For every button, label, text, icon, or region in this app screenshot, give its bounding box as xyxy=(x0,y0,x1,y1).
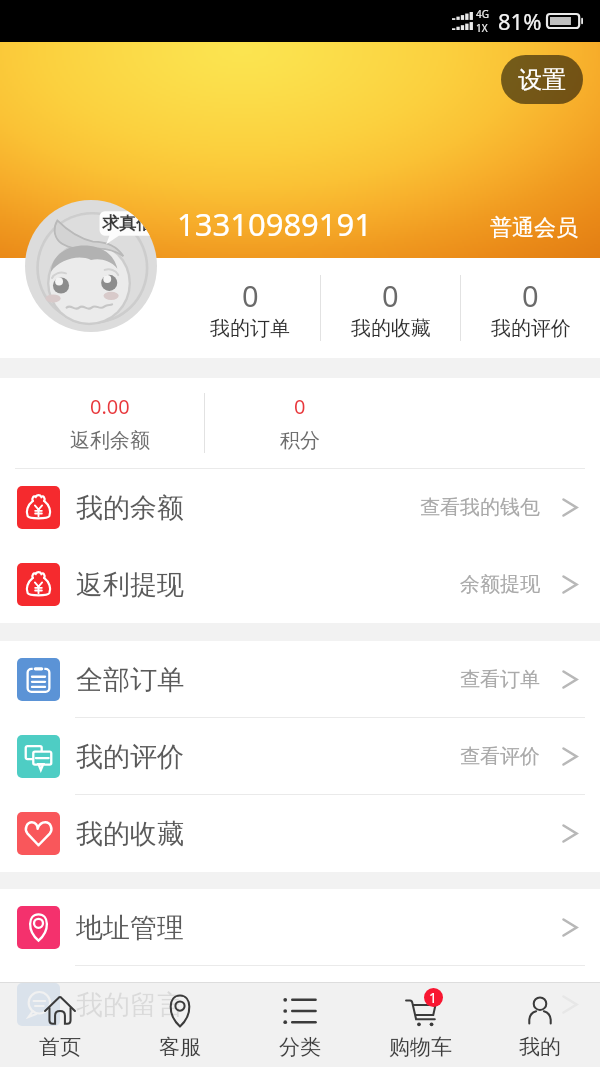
staticText: 求真僧 xyxy=(102,213,153,234)
staticText: 13310989191 xyxy=(177,203,373,245)
staticText: 普通会员 xyxy=(490,214,578,242)
button[interactable]: 0 xyxy=(205,378,395,468)
staticText: 0 xyxy=(242,276,259,315)
staticText: 我的收藏 xyxy=(76,817,184,851)
staticText: 0 xyxy=(294,393,306,420)
button[interactable]: 我的评价 xyxy=(0,718,600,795)
staticText: 地址管理 xyxy=(76,911,184,945)
staticText: 我的留言 xyxy=(76,988,184,1022)
button[interactable]: 我的 xyxy=(480,983,600,1067)
staticText: 0 xyxy=(522,276,539,315)
staticText: 设置 xyxy=(518,65,566,95)
staticText: 1 xyxy=(429,988,438,1007)
button[interactable]: 分类 xyxy=(240,983,360,1067)
staticText: 0.00 xyxy=(90,393,130,420)
button[interactable]: 我的留言 xyxy=(0,966,600,1043)
staticText: 我的评价 xyxy=(491,316,571,341)
staticText: 我的余额 xyxy=(76,491,184,525)
button[interactable]: 1 xyxy=(360,983,480,1067)
button[interactable]: 我的余额 xyxy=(0,469,600,546)
button[interactable]: 首页 xyxy=(0,983,120,1067)
button[interactable]: 设置 xyxy=(501,55,583,104)
staticText: 81% xyxy=(498,6,542,36)
staticText: 1X xyxy=(476,21,488,35)
staticText: 我的 xyxy=(519,1034,561,1060)
button[interactable]: 全部订单 xyxy=(0,641,600,718)
staticText: 全部订单 xyxy=(76,663,184,697)
staticText: 首页 xyxy=(39,1034,81,1060)
staticText: 查看我的钱包 xyxy=(420,495,540,520)
staticText: 我的评价 xyxy=(76,740,184,774)
staticText: 返利提现 xyxy=(76,568,184,602)
staticText: 积分 xyxy=(280,428,320,453)
staticText: 购物车 xyxy=(389,1034,452,1060)
staticText: 查看订单 xyxy=(460,667,540,692)
button[interactable]: 0 xyxy=(321,258,460,358)
button[interactable]: 0 xyxy=(180,258,320,358)
staticText: 4G xyxy=(476,7,489,21)
staticText: 查看评价 xyxy=(460,744,540,769)
button[interactable]: Avatar xyxy=(25,200,157,332)
button[interactable]: 地址管理 xyxy=(0,889,600,966)
staticText: 客服 xyxy=(159,1034,201,1060)
staticText: 余额提现 xyxy=(460,572,540,597)
button[interactable]: 我的收藏 xyxy=(0,795,600,872)
button[interactable]: 返利提现 xyxy=(0,546,600,623)
staticText: 我的收藏 xyxy=(351,316,431,341)
button[interactable]: 0 xyxy=(461,258,600,358)
staticText: 我的订单 xyxy=(210,316,290,341)
staticText: 0 xyxy=(382,276,399,315)
staticText: 返利余额 xyxy=(70,428,150,453)
staticText: 分类 xyxy=(279,1034,321,1060)
button[interactable]: 客服 xyxy=(120,983,240,1067)
button[interactable]: 0.00 xyxy=(15,378,204,468)
